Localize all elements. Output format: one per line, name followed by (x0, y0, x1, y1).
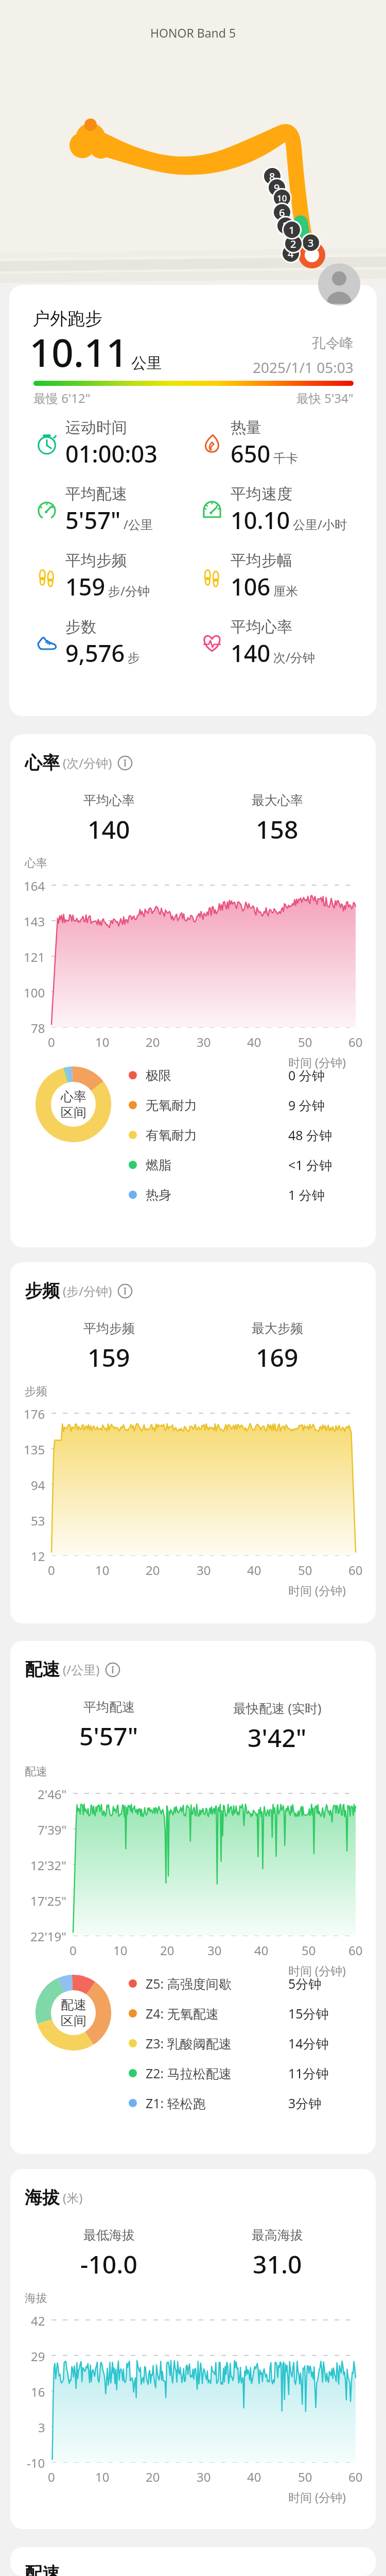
staticText: 心率 (61, 1089, 86, 1105)
staticText: 3分钟 (288, 2094, 322, 2112)
staticText: 0 (48, 2468, 55, 2485)
button[interactable]: 平均步频 (35, 551, 205, 602)
button[interactable]: 步数 (35, 617, 205, 669)
staticText: 140 (231, 637, 271, 669)
staticText: /公里 (124, 516, 153, 533)
staticText: 燃脂 (146, 1157, 171, 1173)
button[interactable]: 平均步幅 (200, 551, 370, 602)
button[interactable]: 无氧耐力 (129, 1090, 365, 1120)
staticText: (步/分钟) (63, 1282, 112, 1299)
staticText: 平均步频 (83, 1320, 135, 1336)
staticText: 有氧耐力 (146, 1127, 197, 1143)
staticText: 户外跑步 (32, 308, 102, 330)
staticText: 31.0 (253, 2247, 302, 2281)
staticText: 50 (302, 1942, 316, 1959)
staticText: 10 (95, 1562, 110, 1579)
staticText: Z4: 无氧配速 (146, 2005, 219, 2022)
staticText: 配速 (25, 1765, 47, 1779)
staticText: 最慢 6'12" (33, 389, 91, 406)
staticText: 2'46" (38, 1786, 67, 1803)
button[interactable]: User avatar (318, 263, 360, 306)
staticText: 30 (197, 2468, 211, 2485)
button[interactable]: Z3: 乳酸阈配速 (129, 2028, 365, 2058)
staticText: 1 (289, 223, 295, 237)
staticText: 40 (247, 2468, 261, 2485)
button[interactable]: 平均速度 (200, 484, 370, 536)
staticText: 步数 (65, 617, 96, 637)
staticText: 2 (290, 237, 296, 251)
staticText: -10 (27, 2454, 45, 2471)
staticText: 最快配速 (实时) (233, 1699, 322, 1717)
staticText: 140 (87, 812, 130, 846)
staticText: 176 (24, 1405, 45, 1422)
staticText: 5'57" (65, 504, 121, 536)
button[interactable]: 热量 (200, 418, 370, 469)
staticText: 厘米 (273, 584, 298, 599)
staticText: 平均配速 (65, 484, 127, 504)
staticText: 78 (31, 1020, 45, 1037)
button[interactable]: 热身 (129, 1180, 365, 1210)
staticText: 30 (197, 1033, 211, 1050)
staticText: 热身 (146, 1187, 171, 1203)
staticText: 最低海拔 (83, 2227, 135, 2243)
staticText: 4 (288, 247, 294, 261)
staticText: 94 (31, 1477, 45, 1494)
staticText: 极限 (146, 1067, 171, 1083)
staticText: 时间 (分钟) (288, 1054, 346, 1070)
staticText: 143 (24, 913, 45, 930)
staticText: 配速 (61, 1997, 86, 2013)
staticText: 7'39" (38, 1821, 67, 1838)
staticText: 平均配速 (83, 1699, 135, 1715)
staticText: 20 (146, 1562, 160, 1579)
staticText: 平均心率 (231, 617, 292, 637)
button[interactable]: Z1: 轻松跑 (129, 2088, 365, 2118)
staticText: 无氧耐力 (146, 1097, 197, 1113)
button[interactable]: 平均心率 (200, 617, 370, 669)
staticText: 29 (31, 2348, 45, 2365)
staticText: Z2: 马拉松配速 (146, 2064, 232, 2082)
staticText: 区间 (61, 1105, 86, 1121)
button[interactable]: 燃脂 (129, 1150, 365, 1180)
staticText: 5 (283, 219, 289, 233)
button[interactable]: Z2: 马拉松配速 (129, 2058, 365, 2088)
staticText: 20 (146, 2468, 160, 2485)
staticText: 12 (31, 1548, 45, 1565)
staticText: 心率 (25, 752, 60, 774)
staticText: 10 (113, 1942, 128, 1959)
staticText: (/公里) (63, 1661, 100, 1678)
button[interactable]: 平均配速 (35, 484, 205, 536)
staticText: 01:00:03 (65, 438, 157, 469)
button[interactable]: Z5: 高强度间歇 (129, 1969, 365, 1998)
staticText: 区间 (61, 2013, 86, 2029)
staticText: 最大心率 (252, 792, 303, 808)
staticText: 公里 (131, 353, 162, 373)
staticText: 9 分钟 (288, 1096, 325, 1114)
staticText: 9,576 (65, 637, 125, 669)
staticText: 159 (65, 571, 106, 602)
staticText: 最快 5'34" (296, 389, 354, 406)
staticText: 50 (298, 1033, 312, 1050)
staticText: 时间 (分钟) (288, 1582, 346, 1598)
staticText: 12'32" (30, 1857, 67, 1874)
button[interactable]: 有氧耐力 (129, 1120, 365, 1150)
button[interactable]: Z4: 无氧配速 (129, 1998, 365, 2028)
button[interactable]: 运动时间 (35, 418, 205, 469)
staticText: 15分钟 (288, 2005, 329, 2022)
staticText: 2025/1/1 05:03 (253, 358, 354, 377)
staticText: 3 (38, 2419, 45, 2436)
button[interactable]: Info about 步频 (117, 1283, 133, 1299)
staticText: 5'57" (79, 1719, 138, 1753)
staticText: (米) (63, 2189, 83, 2206)
staticText: Z1: 轻松跑 (146, 2094, 206, 2112)
staticText: 时间 (分钟) (288, 1962, 346, 1978)
staticText: 20 (160, 1942, 174, 1959)
button[interactable]: Info about 配速 (105, 1662, 120, 1677)
staticText: 9 (274, 181, 280, 195)
staticText: 10.10 (231, 504, 290, 536)
staticText: 48 分钟 (288, 1126, 332, 1144)
staticText: 最大步频 (252, 1320, 303, 1336)
staticText: 6 (279, 206, 285, 219)
button[interactable]: Info about 心率 (117, 755, 133, 771)
staticText: 0 (48, 1033, 55, 1050)
button[interactable]: 极限 (129, 1060, 365, 1090)
